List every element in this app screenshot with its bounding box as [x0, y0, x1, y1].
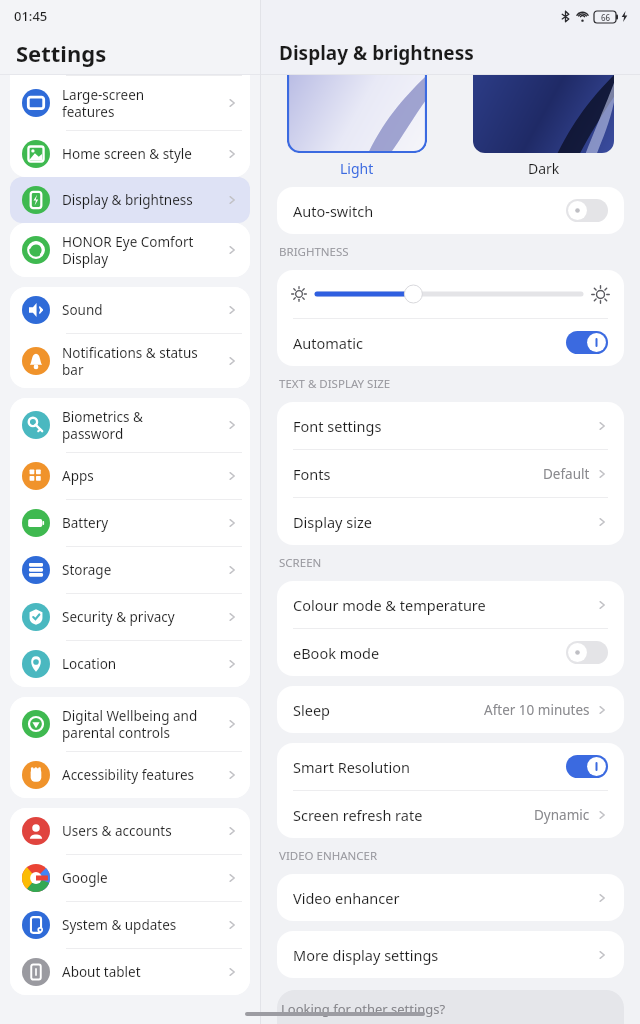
- staticText: HONOR Eye Comfort Display: [62, 233, 226, 268]
- button[interactable]: Accessibility features: [10, 752, 250, 798]
- button[interactable]: Display size: [277, 498, 624, 545]
- staticText: Automatic: [293, 333, 566, 353]
- button[interactable]: Screen refresh rate: [277, 791, 624, 838]
- button[interactable]: Google: [10, 855, 250, 901]
- staticText: About tablet: [62, 963, 226, 981]
- button[interactable]: Apps: [10, 453, 250, 499]
- button[interactable]: Dark theme: [473, 75, 614, 153]
- button[interactable]: HONOR Eye Comfort Display: [10, 223, 250, 277]
- button[interactable]: Large-screen features: [10, 76, 250, 130]
- staticText: eBook mode: [293, 643, 566, 663]
- button[interactable]: Automatic: [277, 319, 624, 366]
- button[interactable]: Font settings: [277, 402, 624, 449]
- staticText: Display & brightness: [62, 191, 226, 209]
- button[interactable]: Smart Resolution: [277, 743, 624, 790]
- button[interactable]: [317, 283, 581, 305]
- button[interactable]: Display & brightness: [10, 177, 250, 223]
- button[interactable]: Notifications & status bar: [10, 334, 250, 388]
- staticText: Notifications & status bar: [62, 344, 226, 379]
- staticText: 66: [601, 12, 611, 23]
- staticText: Screen refresh rate: [293, 805, 534, 825]
- staticText: Looking for other settings?: [281, 1000, 446, 1018]
- button[interactable]: Sleep: [277, 686, 624, 733]
- staticText: Sleep: [293, 700, 484, 720]
- staticText: Home screen & style: [62, 145, 226, 163]
- button[interactable]: Video enhancer: [277, 874, 624, 921]
- staticText: Light: [340, 159, 374, 178]
- staticText: TEXT & DISPLAY SIZE: [279, 376, 391, 392]
- button[interactable]: Looking for other settings?: [277, 990, 624, 1024]
- staticText: Sound: [62, 301, 226, 319]
- button[interactable]: Fonts: [277, 450, 624, 497]
- staticText: Users & accounts: [62, 822, 226, 840]
- button[interactable]: Security & privacy: [10, 594, 250, 640]
- button[interactable]: Auto-switch: [277, 187, 624, 234]
- staticText: Smart Resolution: [293, 757, 566, 777]
- button[interactable]: Users & accounts: [10, 808, 250, 854]
- staticText: Biometrics & password: [62, 408, 226, 443]
- button[interactable]: Biometrics & password: [10, 398, 250, 452]
- staticText: Apps: [62, 467, 226, 485]
- staticText: BRIGHTNESS: [279, 244, 349, 260]
- staticText: Colour mode & temperature: [293, 595, 596, 615]
- staticText: VIDEO ENHANCER: [279, 848, 378, 864]
- staticText: Display size: [293, 512, 596, 532]
- staticText: Video enhancer: [293, 888, 596, 908]
- staticText: More display settings: [293, 945, 596, 965]
- staticText: Auto-switch: [293, 201, 566, 221]
- staticText: Google: [62, 869, 226, 887]
- staticText: Storage: [62, 561, 226, 579]
- staticText: Battery: [62, 514, 226, 532]
- staticText: Large-screen features: [62, 86, 226, 121]
- button[interactable]: Colour mode & temperature: [277, 581, 624, 628]
- staticText: Display & brightness: [279, 40, 474, 66]
- staticText: Dark: [528, 159, 560, 178]
- staticText: After 10 minutes: [484, 701, 590, 719]
- button[interactable]: Home screen & style: [10, 131, 250, 177]
- button[interactable]: Digital Wellbeing and parental controls: [10, 697, 250, 751]
- staticText: System & updates: [62, 916, 226, 934]
- button[interactable]: More display settings: [277, 931, 624, 978]
- staticText: 01:45: [14, 7, 48, 25]
- button[interactable]: About tablet: [10, 949, 250, 995]
- staticText: Accessibility features: [62, 766, 226, 784]
- button[interactable]: Location: [10, 641, 250, 687]
- staticText: Fonts: [293, 464, 543, 484]
- staticText: Location: [62, 655, 226, 673]
- staticText: Security & privacy: [62, 608, 226, 626]
- staticText: Digital Wellbeing and parental controls: [62, 707, 226, 742]
- button[interactable]: Storage: [10, 547, 250, 593]
- staticText: Settings: [16, 38, 107, 68]
- staticText: Default: [543, 465, 590, 483]
- button[interactable]: Sound: [10, 287, 250, 333]
- button[interactable]: System & updates: [10, 902, 250, 948]
- button[interactable]: eBook mode: [277, 629, 624, 676]
- staticText: Dynamic: [534, 806, 590, 824]
- button[interactable]: Battery: [10, 500, 250, 546]
- staticText: Font settings: [293, 416, 596, 436]
- button[interactable]: Light theme: [287, 75, 427, 153]
- staticText: SCREEN: [279, 555, 322, 571]
